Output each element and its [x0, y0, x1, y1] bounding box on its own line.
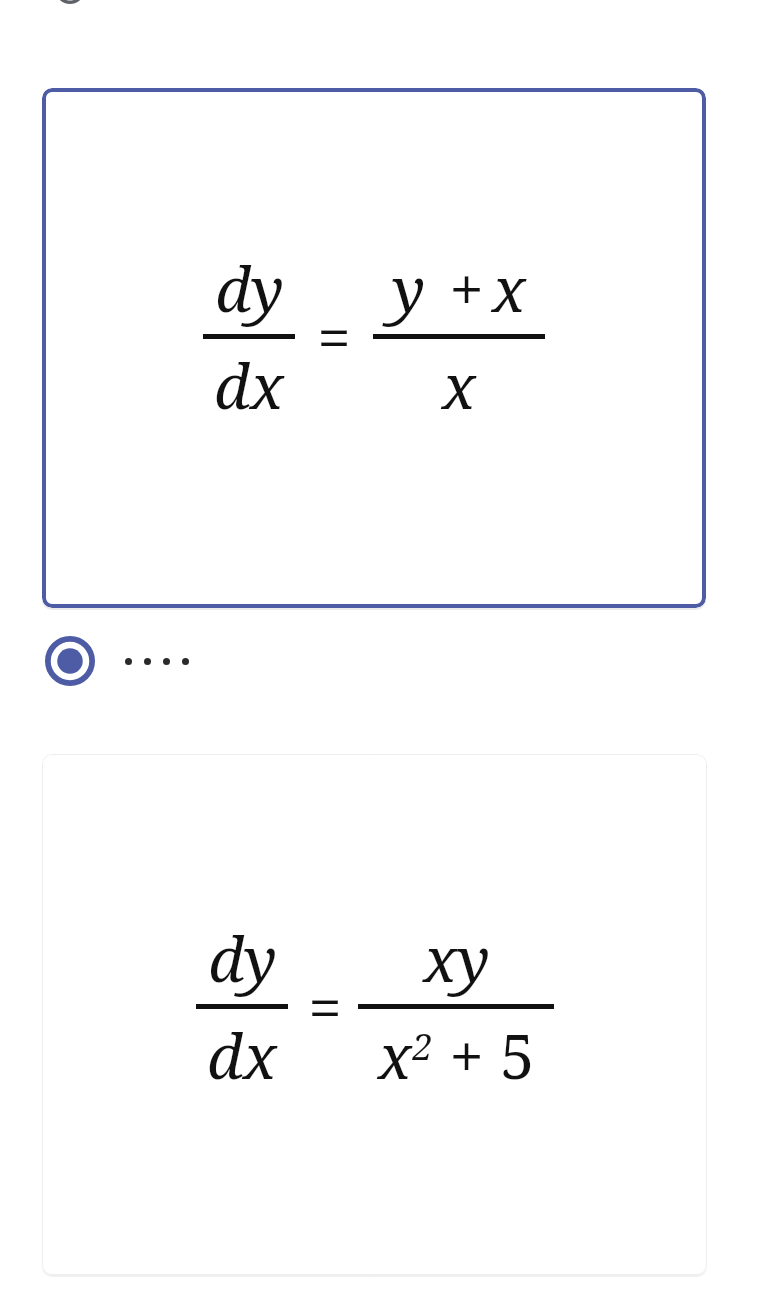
staticText: dx	[207, 1013, 277, 1097]
staticText: =	[317, 296, 351, 378]
staticText: x	[442, 343, 476, 427]
staticText: xy	[423, 916, 490, 1000]
staticText: =	[308, 966, 342, 1048]
button[interactable]	[0, 0, 759, 30]
staticText: + 5	[433, 1013, 535, 1097]
button[interactable]: dy	[42, 754, 707, 1275]
staticText: +	[425, 246, 492, 330]
staticText: dy	[208, 916, 277, 1000]
staticText: 2	[412, 1022, 433, 1071]
staticText: y	[392, 246, 425, 330]
staticText: dy	[215, 246, 284, 330]
staticText: x	[492, 246, 526, 330]
staticText: dx	[214, 343, 284, 427]
button[interactable]: dy	[42, 88, 706, 608]
staticText: x	[378, 1013, 412, 1097]
button[interactable]	[0, 632, 759, 690]
